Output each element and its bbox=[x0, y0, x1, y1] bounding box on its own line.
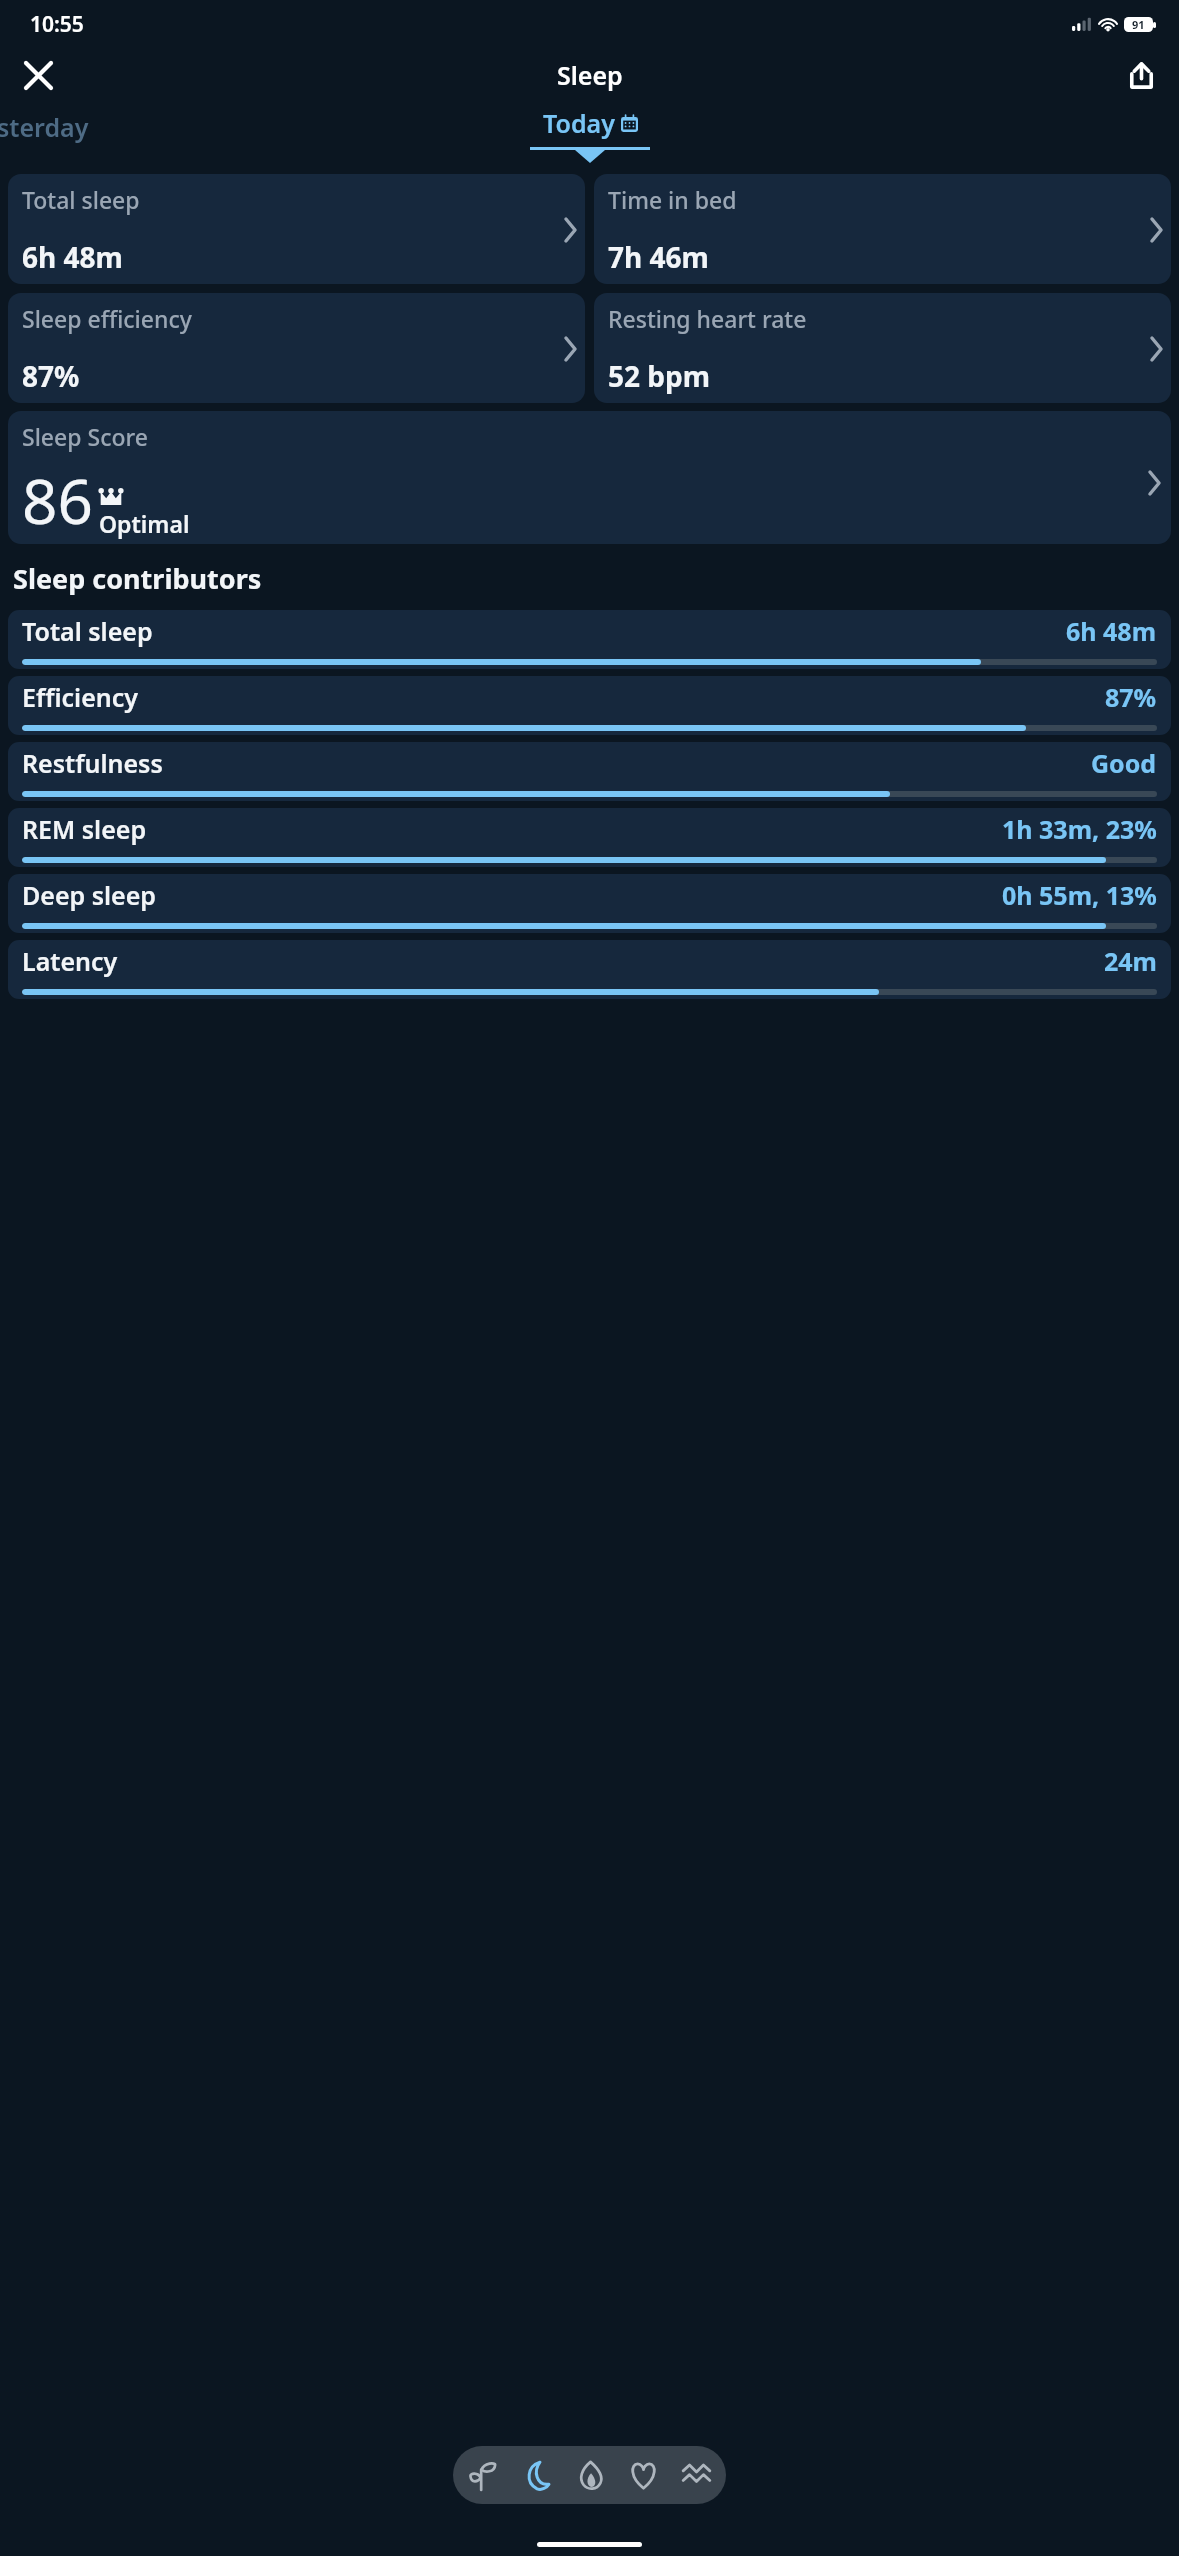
button[interactable]: Heart bbox=[620, 2452, 666, 2498]
button[interactable]: Deep sleep bbox=[8, 874, 1171, 933]
staticText: Restfulness bbox=[22, 746, 163, 780]
staticText: 0h 55m, 13% bbox=[1002, 878, 1157, 912]
button[interactable]: Sleep efficiency bbox=[8, 293, 585, 403]
staticText: Resting heart rate bbox=[608, 303, 807, 334]
staticText: Efficiency bbox=[22, 680, 139, 714]
staticText: 1h 33m, 23% bbox=[1002, 812, 1157, 846]
staticText: 91 bbox=[1132, 17, 1145, 32]
staticText: Total sleep bbox=[22, 184, 140, 215]
staticText: Time in bed bbox=[608, 184, 737, 215]
staticText: Latency bbox=[22, 944, 118, 978]
staticText: REM sleep bbox=[22, 812, 147, 846]
staticText: 52 bpm bbox=[608, 357, 711, 395]
staticText: Sleep efficiency bbox=[22, 303, 192, 334]
button[interactable]: Total sleep bbox=[8, 174, 585, 284]
button[interactable]: Resting heart rate bbox=[594, 293, 1171, 403]
button[interactable]: Sleep bbox=[513, 2452, 559, 2498]
staticText: 7h 46m bbox=[608, 238, 709, 276]
staticText: 86 bbox=[22, 458, 93, 542]
button[interactable]: sterday bbox=[0, 110, 89, 144]
button[interactable]: Share bbox=[1117, 51, 1165, 99]
button[interactable]: Sleep Score bbox=[8, 411, 1171, 544]
staticText: Deep sleep bbox=[22, 878, 157, 912]
button[interactable]: REM sleep bbox=[8, 808, 1171, 867]
staticText: Good bbox=[1091, 746, 1157, 780]
staticText: 6h 48m bbox=[22, 238, 123, 276]
button[interactable]: Time in bed bbox=[594, 174, 1171, 284]
staticText: 87% bbox=[1105, 680, 1157, 714]
staticText: Optimal bbox=[99, 508, 190, 539]
staticText: Today bbox=[543, 106, 615, 140]
button[interactable]: Activity bbox=[460, 2452, 506, 2498]
button[interactable]: Today bbox=[530, 106, 650, 163]
staticText: 87% bbox=[22, 357, 80, 395]
staticText: 10:55 bbox=[30, 10, 84, 39]
button[interactable]: Close bbox=[14, 51, 62, 99]
staticText: 6h 48m bbox=[1066, 614, 1157, 648]
staticText: 24m bbox=[1104, 944, 1157, 978]
staticText: Total sleep bbox=[22, 614, 153, 648]
button[interactable]: Restfulness bbox=[8, 742, 1171, 801]
button[interactable]: Trends bbox=[673, 2452, 719, 2498]
button[interactable]: Efficiency bbox=[8, 676, 1171, 735]
staticText: Sleep Score bbox=[22, 421, 148, 452]
staticText: Sleep bbox=[557, 58, 623, 92]
button[interactable]: Calories bbox=[567, 2452, 613, 2498]
button[interactable]: Latency bbox=[8, 940, 1171, 999]
staticText: Sleep contributors bbox=[13, 560, 262, 597]
button[interactable]: Total sleep bbox=[8, 610, 1171, 669]
